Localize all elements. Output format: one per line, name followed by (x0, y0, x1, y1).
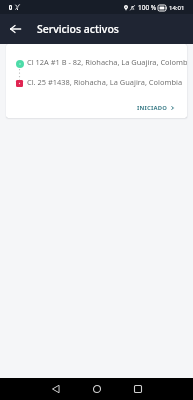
staticText: Servicios activos (37, 22, 119, 36)
staticText: INICIADO (137, 104, 168, 112)
button[interactable]: Home (87, 379, 107, 399)
button[interactable]: Back (46, 379, 66, 399)
button[interactable]: Recent apps (128, 379, 148, 399)
button[interactable]: Cl 12A #1 B - 82, Riohacha, La Guajira, … (6, 44, 187, 118)
staticText: 14:01 (169, 4, 185, 12)
staticText: 100 % (138, 3, 157, 12)
staticText: Cl 12A #1 B - 82, Riohacha, La Guajira, … (27, 57, 187, 67)
button[interactable]: INICIADO (137, 104, 175, 112)
button[interactable]: Back (5, 19, 25, 39)
staticText: Cl. 25 #1438, Riohacha, La Guajira, Colo… (27, 77, 187, 87)
